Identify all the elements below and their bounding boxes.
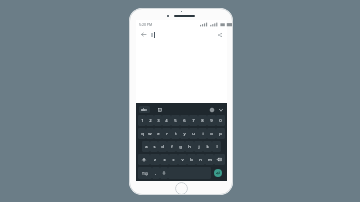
- staticText: 1: [141, 118, 144, 124]
- button[interactable]: r: [162, 128, 171, 139]
- staticText: a: [145, 144, 148, 150]
- staticText: v: [181, 157, 184, 163]
- staticText: !1☺: [142, 171, 149, 175]
- staticText: 3: [157, 118, 160, 124]
- button[interactable]: 0: [216, 115, 225, 126]
- staticText: y: [183, 131, 186, 137]
- button[interactable]: l: [212, 141, 221, 152]
- staticText: b: [190, 157, 193, 163]
- button[interactable]: Share: [215, 30, 224, 39]
- staticText: abc: [141, 107, 148, 112]
- staticText: k: [206, 144, 209, 150]
- staticText: w: [148, 131, 152, 137]
- button[interactable]: e: [154, 128, 162, 139]
- button[interactable]: g: [176, 141, 185, 152]
- button[interactable]: q: [138, 128, 146, 139]
- button[interactable]: abc: [139, 106, 150, 113]
- button[interactable]: Send: [211, 167, 225, 179]
- button[interactable]: m: [205, 154, 214, 165]
- staticText: 5:20 PM: [139, 22, 153, 27]
- staticText: l: [216, 144, 218, 150]
- button[interactable]: 6: [180, 115, 189, 126]
- button[interactable]: w: [146, 128, 154, 139]
- button[interactable]: Backspace: [214, 154, 225, 165]
- button[interactable]: 2: [146, 115, 154, 126]
- staticText: d: [161, 144, 164, 150]
- button[interactable]: u: [189, 128, 198, 139]
- staticText: n: [199, 157, 202, 163]
- button[interactable]: ,: [152, 167, 160, 179]
- button[interactable]: b: [187, 154, 196, 165]
- staticText: r: [166, 131, 168, 137]
- staticText: s: [153, 144, 156, 150]
- button[interactable]: 8: [198, 115, 207, 126]
- button[interactable]: [151, 30, 215, 40]
- button[interactable]: i: [198, 128, 207, 139]
- button[interactable]: Settings: [208, 106, 215, 113]
- staticText: 4: [165, 118, 168, 124]
- staticText: 7: [192, 118, 195, 124]
- button[interactable]: 1: [138, 115, 146, 126]
- staticText: 6: [183, 118, 186, 124]
- staticText: p: [219, 131, 222, 137]
- button[interactable]: 9: [207, 115, 216, 126]
- staticText: 9: [210, 118, 213, 124]
- button[interactable]: x: [160, 154, 169, 165]
- staticText: h: [188, 144, 191, 150]
- staticText: c: [172, 157, 175, 163]
- button[interactable]: s: [150, 141, 158, 152]
- button[interactable]: Hide keyboard: [217, 106, 224, 113]
- button[interactable]: k: [203, 141, 212, 152]
- staticText: t: [175, 131, 177, 137]
- staticText: i: [202, 131, 204, 137]
- button[interactable]: d: [158, 141, 167, 152]
- button[interactable]: v: [178, 154, 187, 165]
- button[interactable]: y: [180, 128, 189, 139]
- staticText: z: [154, 157, 156, 163]
- staticText: x: [163, 157, 166, 163]
- button[interactable]: c: [169, 154, 178, 165]
- staticText: u: [192, 131, 195, 137]
- button[interactable]: p: [216, 128, 225, 139]
- staticText: 0: [219, 118, 222, 124]
- button[interactable]: 3: [154, 115, 162, 126]
- button[interactable]: Shift: [138, 154, 150, 165]
- button[interactable]: t: [171, 128, 180, 139]
- button[interactable]: z: [150, 154, 160, 165]
- staticText: f: [171, 144, 173, 150]
- button[interactable]: Clipboard: [156, 106, 163, 113]
- staticText: 8: [201, 118, 204, 124]
- staticText: e: [157, 131, 160, 137]
- button[interactable]: o: [207, 128, 216, 139]
- button[interactable]: Back: [139, 30, 148, 39]
- button[interactable]: h: [185, 141, 194, 152]
- staticText: g: [179, 144, 182, 150]
- button[interactable]: 4: [162, 115, 171, 126]
- staticText: o: [210, 131, 213, 137]
- button[interactable]: !1☺: [138, 167, 152, 179]
- button[interactable]: 5: [171, 115, 180, 126]
- button[interactable]: f: [167, 141, 176, 152]
- staticText: q: [141, 131, 144, 137]
- button[interactable]: Voice input: [160, 167, 168, 179]
- button[interactable]: j: [194, 141, 203, 152]
- button[interactable]: 7: [189, 115, 198, 126]
- button[interactable]: a: [142, 141, 150, 152]
- staticText: m: [208, 157, 212, 163]
- button[interactable]: n: [196, 154, 205, 165]
- staticText: j: [198, 144, 200, 150]
- staticText: 2: [149, 118, 152, 124]
- staticText: 5: [174, 118, 177, 124]
- staticText: ,: [155, 170, 157, 176]
